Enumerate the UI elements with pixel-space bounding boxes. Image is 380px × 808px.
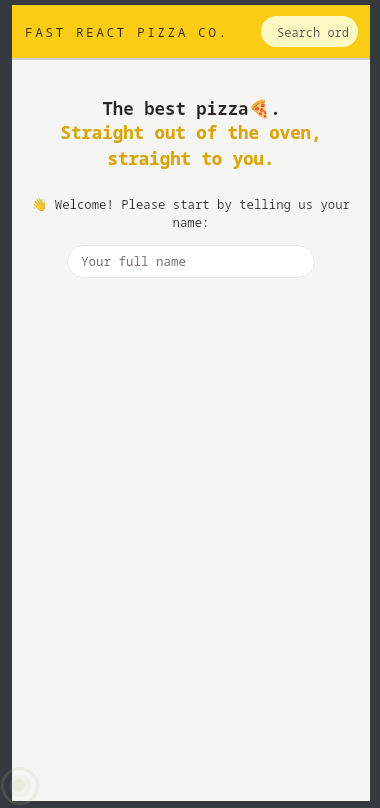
staticText: Straight out of the oven, straight to yo… (56, 120, 326, 170)
button[interactable]: FAST REACT PIZZA CO. (12, 5, 229, 58)
button[interactable]: Your full name (67, 245, 315, 278)
staticText: Your full name (81, 253, 187, 270)
staticText: Search order # (277, 24, 349, 40)
staticText: FAST REACT PIZZA CO. (25, 23, 229, 41)
staticText: The best pizza🍕. (102, 96, 281, 120)
button[interactable]: Search order # (261, 16, 358, 47)
staticText: 👋 Welcome! Please start by telling us yo… (26, 196, 356, 231)
